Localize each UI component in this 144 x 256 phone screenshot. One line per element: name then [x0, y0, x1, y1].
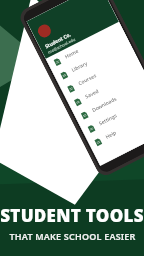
staticText: Help: [104, 129, 118, 141]
button[interactable]: Dictionary: [63, 55, 143, 106]
button[interactable]: Essay: [49, 29, 129, 79]
staticText: Library: [70, 60, 89, 74]
button[interactable]: Math: [43, 15, 122, 66]
button[interactable]: Settings: [80, 88, 144, 139]
button[interactable]: Home: [46, 22, 126, 72]
staticText: Saved: [84, 87, 100, 100]
staticText: Courses: [77, 72, 98, 87]
button[interactable]: Planner: [77, 82, 144, 133]
button[interactable]: Tools: [83, 96, 144, 146]
staticText: CATEGORIES: [66, 18, 96, 37]
staticText: STUDENT TOOLS: [0, 204, 144, 227]
staticText: me@school.edu: [47, 36, 77, 55]
button[interactable]: Student Co.: [27, 0, 119, 59]
button[interactable]: 4:21: [27, 0, 144, 166]
staticText: Student Co.: [44, 31, 73, 50]
staticText: THAT MAKE SCHOOL EASIER: [9, 230, 136, 242]
button[interactable]: Library: [53, 35, 132, 86]
button[interactable]: Notes: [70, 69, 144, 119]
button[interactable]: Help: [87, 102, 144, 152]
staticText: Math: [83, 31, 97, 43]
button[interactable]: Courses: [59, 48, 139, 99]
button[interactable]: Saved: [66, 62, 144, 112]
staticText: Home: [64, 47, 80, 60]
button[interactable]: Science: [56, 42, 136, 93]
staticText: Downloads: [91, 95, 118, 114]
button[interactable]: Downloads: [73, 75, 144, 126]
staticText: Settings: [98, 112, 119, 127]
